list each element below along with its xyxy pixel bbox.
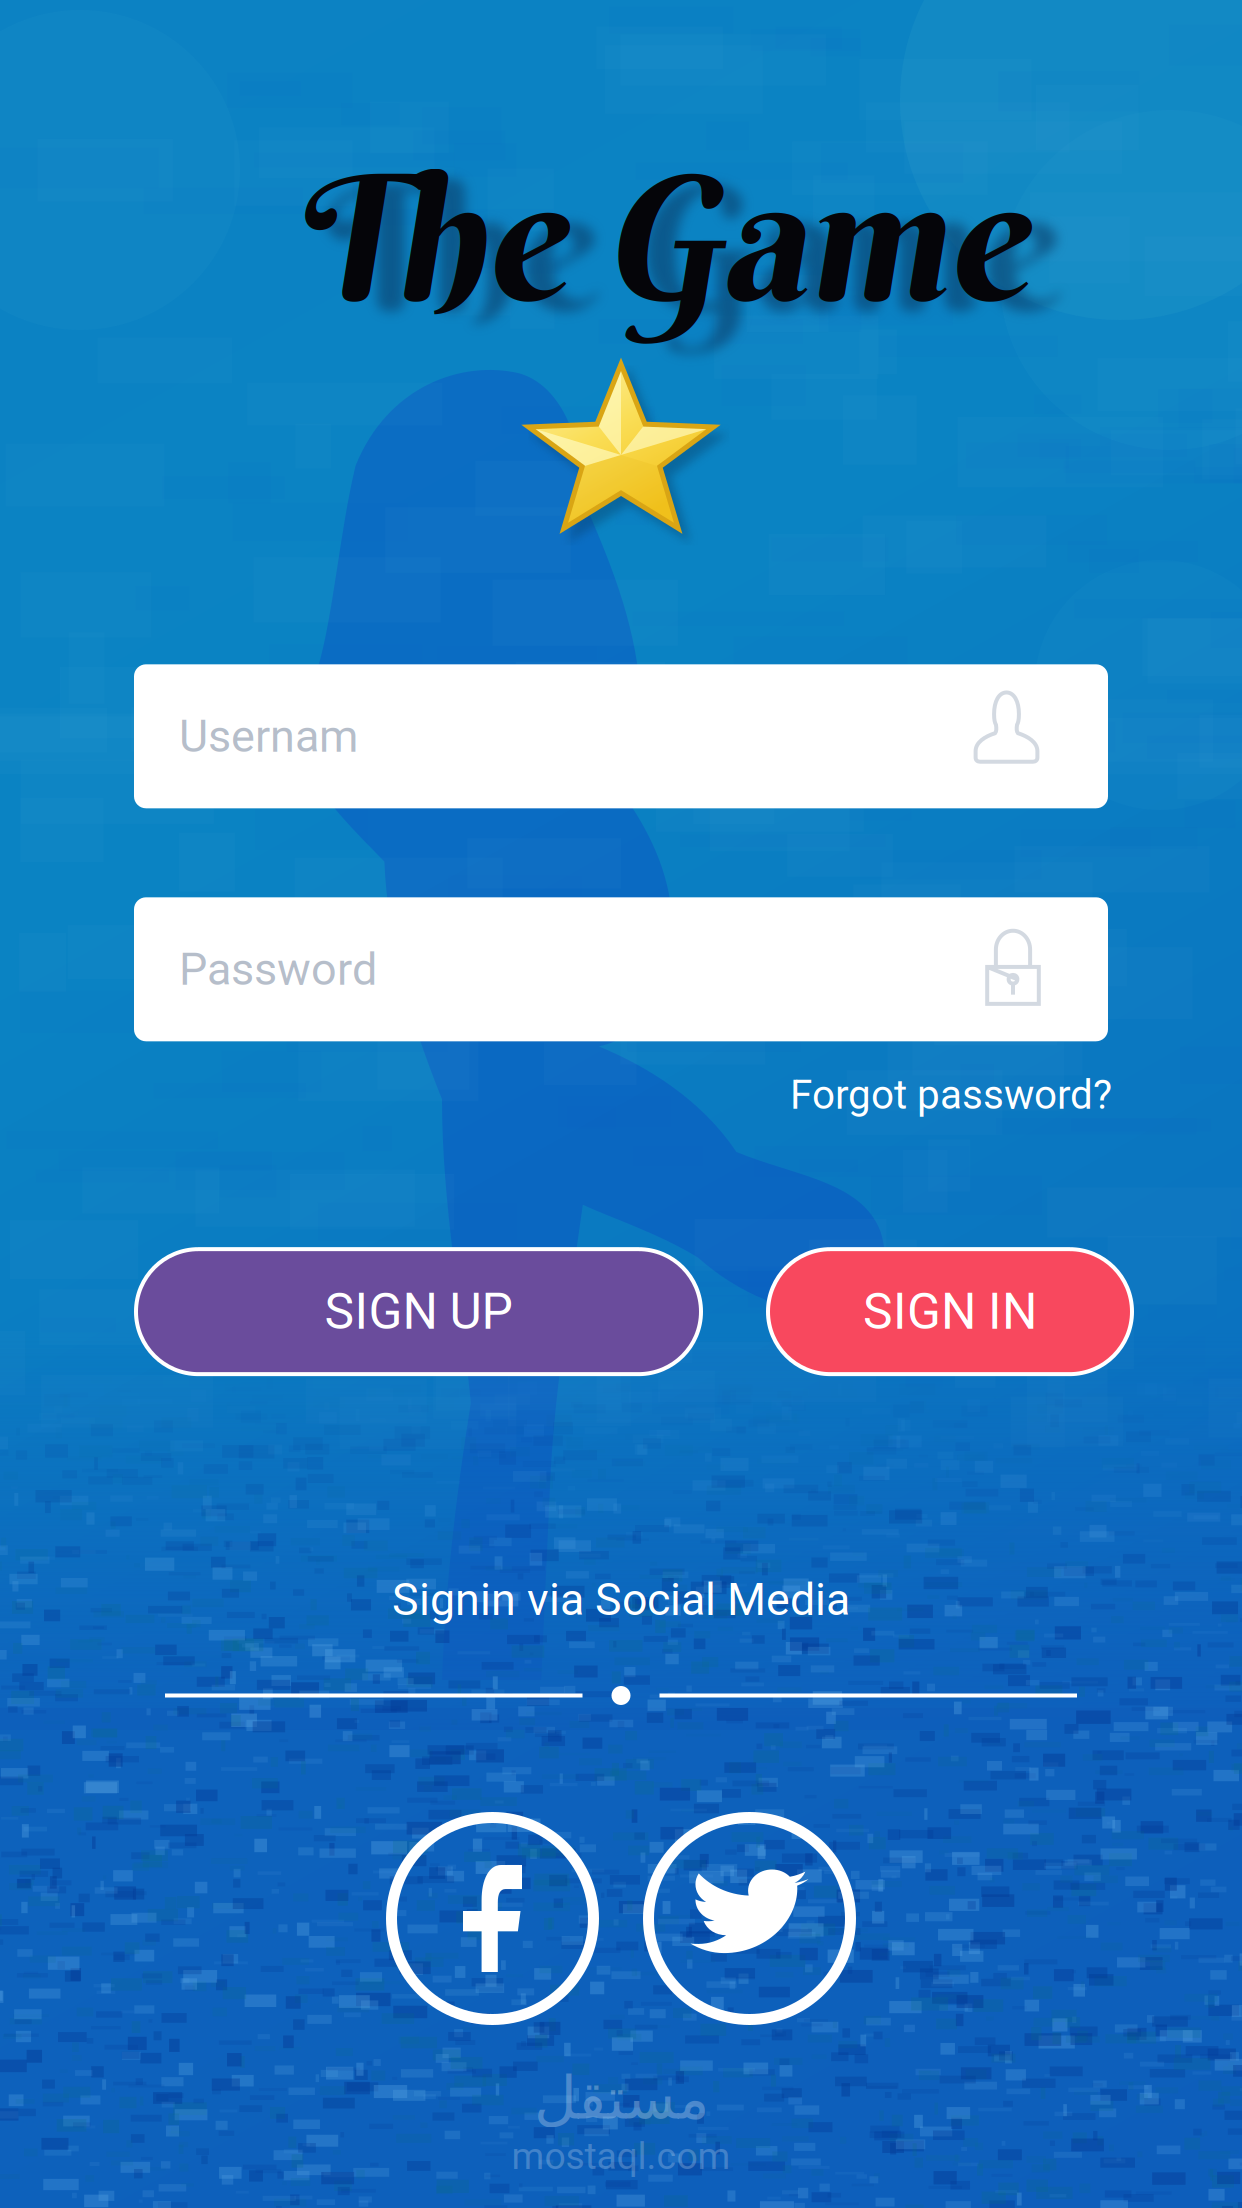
button[interactable]: Password bbox=[134, 897, 1108, 1041]
button[interactable]: SIGN UP bbox=[136, 1249, 701, 1374]
button[interactable]: Usernam bbox=[134, 664, 1108, 808]
staticText: mostaql.com bbox=[511, 2134, 730, 2178]
button[interactable]: Forgot password? bbox=[790, 1071, 1112, 1119]
staticText: SIGN UP bbox=[324, 1282, 512, 1341]
staticText: The Game bbox=[318, 131, 1053, 346]
button[interactable]: Sign in with Facebook bbox=[386, 1812, 599, 2025]
button[interactable]: Sign in with Twitter bbox=[643, 1812, 856, 2025]
button[interactable]: SIGN IN bbox=[768, 1249, 1132, 1374]
staticText: Usernam bbox=[179, 710, 358, 763]
staticText: Forgot password? bbox=[790, 1071, 1112, 1119]
staticText: مستقل bbox=[533, 2064, 708, 2132]
staticText: SIGN IN bbox=[863, 1282, 1037, 1341]
staticText: Signin via Social Media bbox=[392, 1574, 850, 1626]
staticText: Password bbox=[179, 943, 377, 996]
